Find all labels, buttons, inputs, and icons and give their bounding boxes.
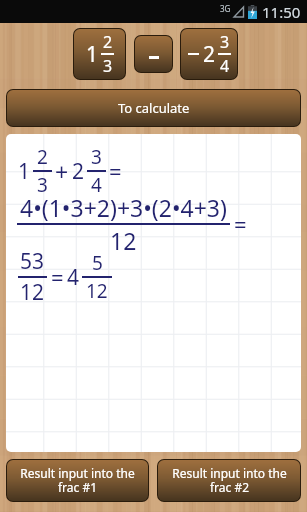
staticText: 12 — [20, 278, 45, 307]
staticText: 3 — [37, 172, 48, 198]
staticText: 53 — [20, 247, 45, 276]
button[interactable]: Result input into the frac #1 — [6, 459, 149, 502]
staticText: To calculate — [118, 99, 190, 117]
staticText: 1 — [86, 40, 99, 69]
staticText: = — [109, 156, 122, 186]
button[interactable]: Minus — [134, 35, 173, 73]
staticText: 11:50 — [262, 2, 301, 22]
staticText: 12 — [86, 278, 108, 304]
staticText: 3 — [103, 55, 113, 77]
staticText: 2 — [37, 144, 48, 170]
staticText: Result input into the frac #2 — [172, 465, 287, 496]
staticText: = — [51, 262, 64, 292]
staticText: 3 — [91, 144, 102, 170]
staticText: 4•(1•3+2)+3•(2•4+3) — [20, 192, 227, 223]
staticText: 12 — [110, 225, 137, 256]
button[interactable]: Result input into the frac #2 — [157, 459, 301, 502]
button[interactable]: 1 — [73, 28, 126, 80]
staticText: 4 — [91, 172, 102, 198]
staticText: Result input into the frac #1 — [20, 465, 135, 496]
staticText: 2 — [72, 157, 85, 186]
staticText: 4 — [67, 263, 80, 292]
button[interactable]: To calculate — [6, 89, 301, 127]
button[interactable]: 2 — [180, 28, 238, 80]
staticText: 2 — [203, 40, 216, 69]
staticText: = — [234, 209, 247, 239]
staticText: 5 — [92, 250, 103, 276]
staticText: 3G — [220, 3, 231, 14]
staticText: 1 — [18, 157, 31, 186]
staticText: 3 — [220, 31, 230, 53]
staticText: 2 — [103, 31, 113, 53]
staticText: + — [55, 156, 69, 187]
staticText: 4 — [220, 55, 230, 77]
